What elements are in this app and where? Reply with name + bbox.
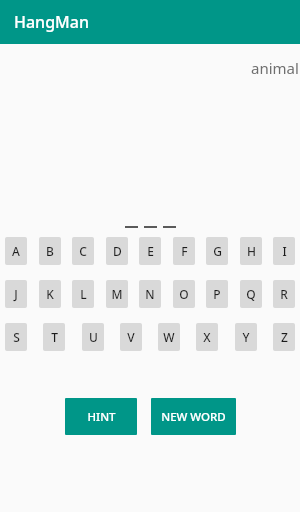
- button[interactable]: A: [5, 237, 27, 265]
- button[interactable]: K: [39, 280, 61, 308]
- button[interactable]: X: [196, 323, 218, 351]
- staticText: G: [213, 243, 222, 259]
- button[interactable]: U: [82, 323, 104, 351]
- staticText: HangMan: [14, 11, 89, 33]
- staticText: W: [163, 329, 175, 345]
- staticText: M: [111, 286, 123, 302]
- staticText: HINT: [87, 409, 116, 425]
- staticText: R: [280, 286, 288, 302]
- staticText: animal: [251, 58, 299, 78]
- button[interactable]: O: [173, 280, 195, 308]
- button[interactable]: NEW WORD: [151, 398, 236, 435]
- button[interactable]: F: [173, 237, 195, 265]
- button[interactable]: B: [39, 237, 61, 265]
- button[interactable]: P: [206, 280, 228, 308]
- staticText: U: [89, 329, 98, 345]
- staticText: J: [14, 286, 18, 302]
- button[interactable]: Z: [273, 323, 295, 351]
- staticText: S: [13, 329, 20, 345]
- button[interactable]: G: [206, 237, 228, 265]
- button[interactable]: E: [139, 237, 161, 265]
- staticText: O: [179, 286, 189, 302]
- staticText: N: [145, 286, 155, 302]
- staticText: K: [46, 286, 54, 302]
- staticText: H: [247, 243, 256, 259]
- staticText: T: [51, 329, 58, 345]
- button[interactable]: I: [273, 237, 295, 265]
- staticText: Q: [246, 286, 256, 302]
- button[interactable]: L: [72, 280, 94, 308]
- button[interactable]: J: [5, 280, 27, 308]
- button[interactable]: N: [139, 280, 161, 308]
- staticText: I: [282, 243, 287, 259]
- staticText: P: [213, 286, 221, 302]
- button[interactable]: R: [273, 280, 295, 308]
- button[interactable]: Y: [235, 323, 257, 351]
- staticText: E: [147, 243, 154, 259]
- button[interactable]: HINT: [65, 398, 137, 435]
- button[interactable]: D: [106, 237, 128, 265]
- button[interactable]: C: [72, 237, 94, 265]
- button[interactable]: V: [120, 323, 142, 351]
- staticText: NEW WORD: [161, 409, 226, 425]
- staticText: B: [46, 243, 54, 259]
- button[interactable]: Q: [240, 280, 262, 308]
- button[interactable]: W: [158, 323, 180, 351]
- staticText: Y: [242, 329, 250, 345]
- staticText: A: [12, 243, 20, 259]
- staticText: F: [181, 243, 188, 259]
- staticText: Z: [281, 329, 288, 345]
- staticText: L: [80, 286, 87, 302]
- button[interactable]: S: [5, 323, 27, 351]
- staticText: X: [203, 329, 211, 345]
- staticText: V: [127, 329, 135, 345]
- staticText: D: [113, 243, 122, 259]
- staticText: C: [79, 243, 87, 259]
- button[interactable]: T: [43, 323, 65, 351]
- button[interactable]: H: [240, 237, 262, 265]
- button[interactable]: M: [106, 280, 128, 308]
